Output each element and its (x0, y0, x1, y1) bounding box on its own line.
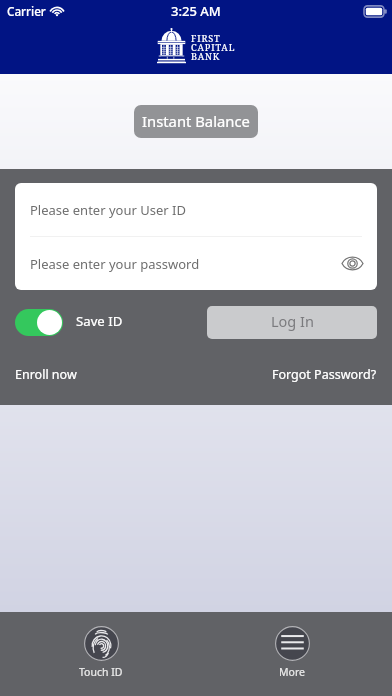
staticText: Carrier (7, 3, 46, 19)
button[interactable]: Save ID (15, 309, 123, 336)
staticText: Enroll now (15, 366, 77, 383)
button[interactable]: Instant Balance (134, 105, 258, 138)
staticText: 3:25 AM (171, 2, 221, 20)
button[interactable]: Touch ID (53, 612, 149, 679)
button[interactable]: Forgot Password? (272, 366, 377, 383)
button[interactable]: Show password (339, 250, 365, 276)
staticText: Instant Balance (142, 111, 250, 131)
button[interactable]: Please enter your password (15, 237, 377, 290)
staticText: Please enter your User ID (30, 201, 186, 219)
button[interactable]: Please enter your User ID (15, 183, 377, 236)
staticText: Save ID (76, 312, 123, 330)
staticText: FIRST CAPITAL BANK (191, 32, 236, 63)
staticText: More (279, 665, 305, 679)
button[interactable]: Enroll now (15, 366, 77, 383)
button[interactable]: Log In (207, 306, 377, 339)
button[interactable]: More (244, 612, 340, 679)
staticText: Touch ID (79, 665, 123, 679)
staticText: Forgot Password? (272, 366, 377, 383)
staticText: Log In (271, 311, 314, 331)
staticText: Please enter your password (30, 255, 200, 273)
